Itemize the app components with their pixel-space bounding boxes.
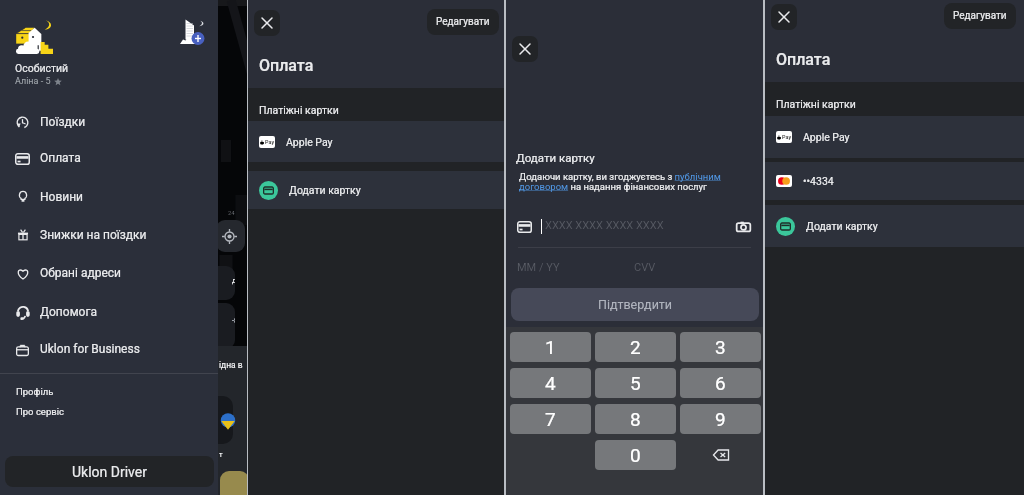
button[interactable]: Обрані адреси	[0, 256, 218, 290]
staticText: Особистий	[15, 62, 69, 74]
staticText: Знижки на поїздки	[40, 228, 147, 242]
button[interactable]: Оплата	[0, 141, 218, 175]
button[interactable]: 7	[510, 404, 591, 434]
button[interactable]: Додати картку	[765, 205, 1024, 247]
button[interactable]: Scan card	[736, 220, 751, 234]
button[interactable]: Close	[512, 36, 538, 62]
staticText: ••4334	[803, 175, 834, 187]
button[interactable]: 5	[595, 368, 676, 398]
staticText: Поїздки	[40, 115, 86, 129]
staticText: 8	[630, 408, 641, 430]
button[interactable]: Backspace	[680, 440, 761, 470]
staticText: ідна в	[219, 360, 243, 370]
staticText: Новини	[40, 190, 84, 204]
staticText: Додати картку	[806, 220, 878, 232]
staticText: 0	[630, 444, 641, 466]
button[interactable]: Add business profile	[176, 15, 208, 47]
staticText: Оплата	[40, 151, 81, 165]
staticText: Apple Pay	[286, 136, 333, 148]
staticText: д	[232, 276, 235, 285]
button[interactable]: Про сервіс	[16, 406, 64, 417]
button[interactable]: Підтвердити	[511, 288, 759, 321]
button[interactable]: Uklon Driver	[5, 456, 214, 487]
button[interactable]: Новини	[0, 180, 218, 214]
staticText: MM / YY	[517, 261, 560, 274]
staticText: Додати картку	[289, 184, 361, 196]
staticText: Допомога	[40, 305, 97, 319]
button[interactable]: 3	[680, 332, 761, 362]
button[interactable]: Додати картку	[248, 171, 504, 209]
staticText: Підтвердити	[598, 297, 673, 312]
staticText: Оплата	[259, 56, 314, 75]
staticText: 6	[715, 372, 726, 394]
staticText: XXXX XXXX XXXX XXXX	[545, 219, 664, 232]
staticText: 1	[545, 336, 556, 358]
staticText: Платіжні картки	[776, 98, 856, 110]
staticText: 5	[630, 372, 641, 394]
button[interactable]: Pay	[248, 121, 504, 162]
button[interactable]: 4	[510, 368, 591, 398]
staticText: Pay	[265, 139, 275, 145]
button[interactable]: 0	[595, 440, 676, 470]
staticText: 7	[545, 408, 556, 430]
staticText: Додаючи картку, ви згоджуєтесь з публічн…	[519, 171, 732, 192]
staticText: 9	[715, 408, 726, 430]
staticText: 4	[545, 372, 556, 394]
button[interactable]: Редагувати	[427, 9, 499, 35]
staticText: Редагувати	[953, 10, 1007, 22]
staticText: Оплата	[776, 50, 831, 69]
button[interactable]: Uklon for Business	[0, 332, 218, 366]
staticText: 24	[228, 209, 235, 216]
staticText: 3	[715, 336, 726, 358]
button[interactable]: Допомога	[0, 295, 218, 329]
button[interactable]: 1	[510, 332, 591, 362]
staticText: Редагувати	[436, 16, 490, 28]
button[interactable]: Профіль	[16, 386, 54, 397]
staticText: CVV	[634, 261, 656, 274]
staticText: Платіжні картки	[259, 104, 339, 116]
staticText: Pay	[782, 134, 792, 140]
staticText: Uklon Driver	[72, 464, 147, 480]
button[interactable]: Знижки на поїздки	[0, 218, 218, 252]
button[interactable]: My location	[216, 220, 245, 252]
staticText: Обрані адреси	[40, 266, 121, 280]
staticText: Додати картку	[516, 151, 595, 164]
button[interactable]: Pay	[765, 116, 1024, 158]
button[interactable]: ••4334	[765, 162, 1024, 200]
staticText: Apple Pay	[803, 131, 850, 143]
staticText: т	[219, 450, 223, 459]
button[interactable]: Поїздки	[0, 105, 218, 139]
button[interactable]: 9	[680, 404, 761, 434]
button[interactable]: Close	[254, 10, 280, 36]
button[interactable]: Редагувати	[944, 3, 1016, 29]
button[interactable]: 6	[680, 368, 761, 398]
staticText: 2	[630, 336, 641, 358]
staticText: Uklon for Business	[40, 342, 140, 356]
button[interactable]: Close	[771, 4, 797, 30]
button[interactable]: 2	[595, 332, 676, 362]
button[interactable]: 8	[595, 404, 676, 434]
staticText: Аліна - 5	[15, 76, 51, 87]
